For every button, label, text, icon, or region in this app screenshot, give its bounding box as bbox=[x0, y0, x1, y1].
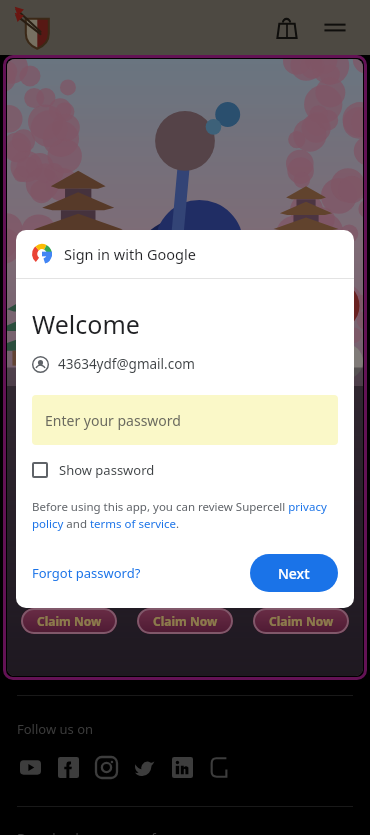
button[interactable]: Enter your password bbox=[32, 395, 338, 445]
button[interactable]: Claim Now bbox=[253, 608, 349, 634]
button[interactable]: YouTube bbox=[17, 754, 43, 780]
staticText: Enter your password bbox=[45, 411, 181, 430]
staticText: Next bbox=[278, 564, 310, 583]
button[interactable]: Next bbox=[250, 554, 338, 592]
button[interactable]: Menu bbox=[318, 11, 352, 45]
staticText: Claim Now bbox=[37, 613, 102, 629]
button[interactable]: LinkedIn bbox=[169, 754, 195, 780]
button[interactable]: Twitter bbox=[131, 754, 157, 780]
button[interactable]: Instagram bbox=[93, 754, 119, 780]
button[interactable]: Show password bbox=[32, 461, 155, 479]
staticText: Claim Now bbox=[153, 613, 218, 629]
staticText: Sign in with Google bbox=[64, 244, 196, 264]
button[interactable]: Claim Now bbox=[21, 608, 117, 634]
staticText: Welcome bbox=[32, 307, 140, 341]
button[interactable]: Brawl bbox=[207, 754, 233, 780]
staticText: 43634ydf@gmail.com bbox=[58, 355, 195, 373]
button[interactable]: Shop bag bbox=[270, 11, 304, 45]
staticText: Download our games from bbox=[17, 829, 181, 835]
staticText: Forgot password? bbox=[32, 564, 141, 582]
button[interactable]: Claim Now bbox=[137, 608, 233, 634]
button[interactable]: Forgot password? bbox=[32, 558, 141, 588]
button[interactable]: Facebook bbox=[55, 754, 81, 780]
button[interactable]: Home logo bbox=[12, 5, 58, 51]
staticText: Follow us on bbox=[17, 720, 94, 738]
staticText: Before using this app, you can review Su… bbox=[32, 499, 338, 532]
staticText: Claim Now bbox=[269, 613, 334, 629]
staticText: Show password bbox=[59, 461, 155, 479]
